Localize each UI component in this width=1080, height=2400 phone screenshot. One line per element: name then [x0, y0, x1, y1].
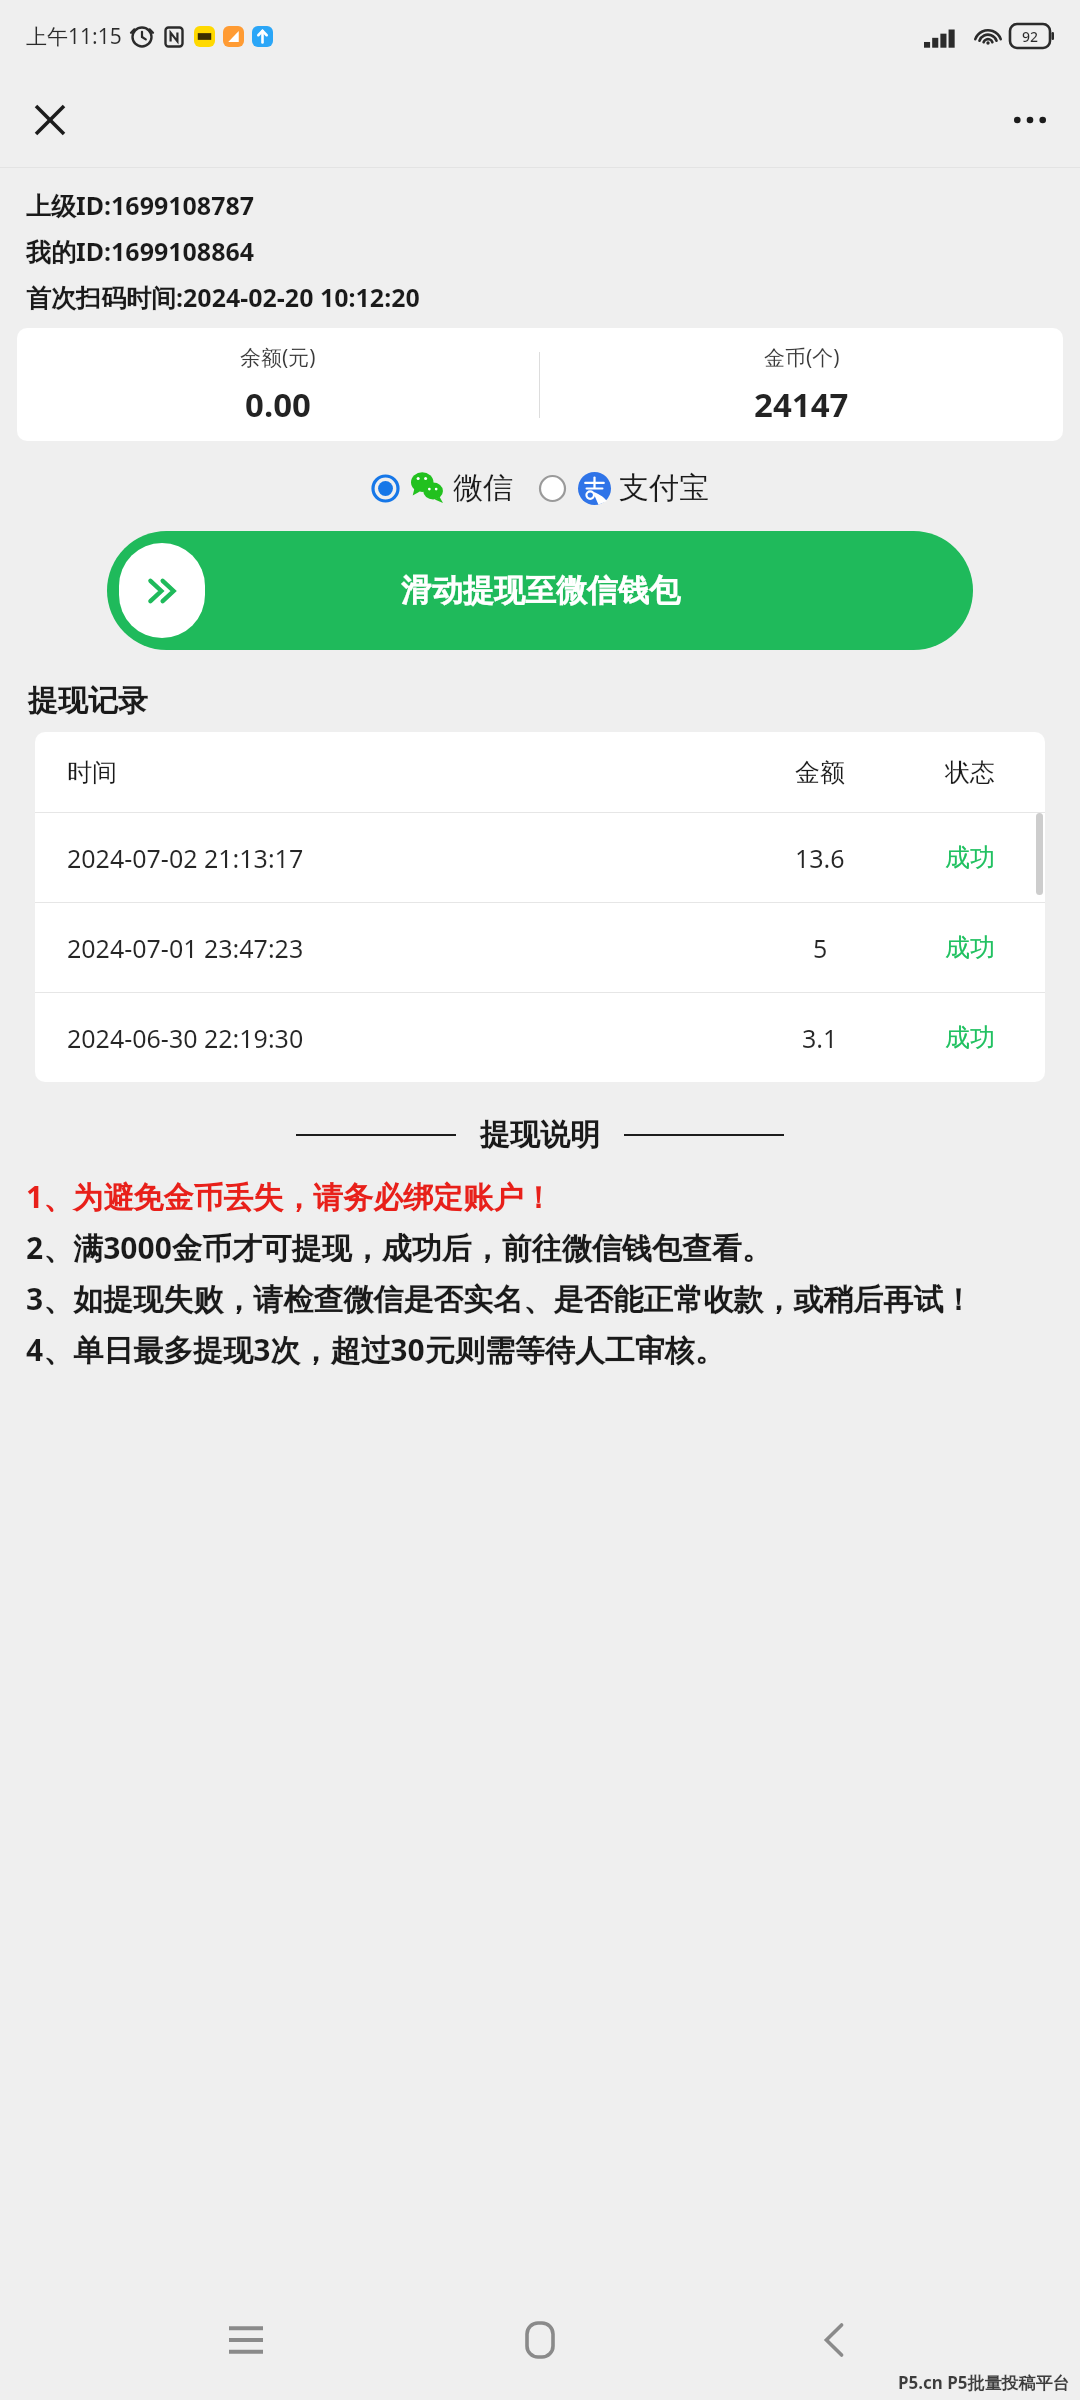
button[interactable]: Close [22, 92, 78, 148]
staticText: 0.00 [245, 382, 311, 427]
staticText: 2024-07-01 23:47:23 [67, 931, 304, 965]
staticText: 提现说明 [480, 1116, 600, 1154]
button[interactable]: 2024-06-30 22:19:30 [35, 993, 1045, 1082]
button[interactable]: 2024-07-02 21:13:17 [35, 813, 1045, 902]
button[interactable]: Back [786, 2292, 882, 2388]
staticText: 5 [813, 931, 828, 965]
staticText: 时间 [67, 757, 117, 788]
staticText: 92 [1022, 27, 1039, 46]
staticText: 2024-06-30 22:19:30 [67, 1021, 304, 1055]
button[interactable]: Recent apps [198, 2292, 294, 2388]
staticText: 24147 [754, 382, 849, 427]
button[interactable]: 时间 [35, 732, 1045, 812]
staticText: 成功 [945, 932, 995, 963]
button[interactable]: 滑动提现至微信钱包 [107, 531, 973, 650]
button[interactable]: 2024-07-01 23:47:23 [35, 903, 1045, 992]
staticText: 提现记录 [28, 682, 148, 720]
staticText: 金额 [795, 757, 845, 788]
staticText: 余额(元) [240, 343, 316, 372]
staticText: 4、单日最多提现3次，超过30元则需等待人工审核。 [26, 1329, 725, 1370]
staticText: 滑动提现至微信钱包 [401, 571, 680, 610]
staticText: 支付宝 [619, 469, 709, 507]
staticText: 成功 [945, 1022, 995, 1053]
staticText: 2、满3000金币才可提现，成功后，前往微信钱包查看。 [26, 1227, 772, 1268]
staticText: 成功 [945, 842, 995, 873]
staticText: 首次扫码时间:2024-02-20 10:12:20 [26, 280, 420, 314]
staticText: 状态 [945, 757, 995, 788]
staticText: 2024-07-02 21:13:17 [67, 841, 304, 875]
staticText: 3、如提现失败，请检查微信是否实名、是否能正常收款，或稍后再试！ [26, 1278, 974, 1319]
button[interactable]: Home [492, 2292, 588, 2388]
button[interactable]: 支付宝 [539, 469, 709, 507]
staticText: 我的ID:1699108864 [26, 234, 255, 268]
staticText: 3.1 [802, 1021, 838, 1055]
staticText: 金币(个) [764, 343, 840, 372]
staticText: P5.cn P5批量投稿平台 [898, 2371, 1070, 2394]
staticText: 1、为避免金币丢失，请务必绑定账户！ [26, 1176, 554, 1217]
button[interactable]: 微信 [372, 469, 513, 507]
staticText: 微信 [453, 469, 513, 507]
button[interactable]: More options [1002, 92, 1058, 148]
staticText: 上午11:15 [26, 22, 122, 51]
staticText: 13.6 [795, 841, 845, 875]
staticText: 上级ID:1699108787 [26, 188, 255, 222]
